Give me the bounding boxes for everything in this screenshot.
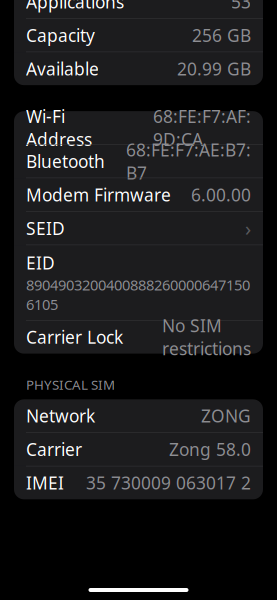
staticText: 89049032004008882600006471506105 — [26, 275, 250, 314]
staticText: Carrier Lock — [26, 326, 123, 349]
button[interactable]: Capacity — [14, 19, 263, 52]
button[interactable]: Modem Firmware — [14, 178, 263, 211]
staticText: No SIM restrictions — [162, 314, 251, 360]
staticText: Applications — [26, 0, 124, 13]
staticText: IMEI — [26, 471, 64, 494]
staticText: SEID — [26, 217, 65, 240]
staticText: Capacity — [26, 24, 95, 47]
button[interactable]: Carrier — [14, 433, 263, 466]
button[interactable]: Available — [14, 52, 263, 85]
staticText: 6.00.00 — [191, 183, 251, 206]
staticText: 256 GB — [192, 24, 251, 47]
button[interactable]: Bluetooth — [14, 145, 263, 178]
staticText: 68:FE:F7:AE:B7:B7 — [126, 138, 251, 184]
staticText: 68:FE:F7:AF:9D:CA — [153, 105, 251, 151]
staticText: PHYSICAL SIM — [26, 376, 115, 393]
staticText: 20.99 GB — [177, 57, 251, 80]
staticText: EID — [26, 251, 55, 274]
staticText: Zong 58.0 — [169, 438, 251, 461]
button[interactable]: Network — [14, 399, 263, 432]
button[interactable]: Carrier Lock — [14, 321, 263, 354]
staticText: 53 — [231, 0, 251, 13]
button[interactable]: IMEI — [14, 466, 263, 499]
staticText: Available — [26, 57, 99, 80]
staticText: ZONG — [201, 404, 251, 427]
button[interactable]: EID — [14, 245, 263, 320]
staticText: Network — [26, 404, 95, 427]
button[interactable]: Wi-Fi Address — [14, 111, 263, 144]
button[interactable]: SEID — [14, 212, 263, 245]
staticText: 35 730009 063017 2 — [86, 471, 251, 494]
staticText: Carrier — [26, 438, 82, 461]
button[interactable]: Applications — [14, 0, 263, 18]
staticText: Bluetooth — [26, 150, 105, 173]
staticText: Modem Firmware — [26, 183, 171, 206]
staticText: Wi-Fi Address — [26, 105, 92, 151]
staticText: › — [245, 215, 251, 241]
